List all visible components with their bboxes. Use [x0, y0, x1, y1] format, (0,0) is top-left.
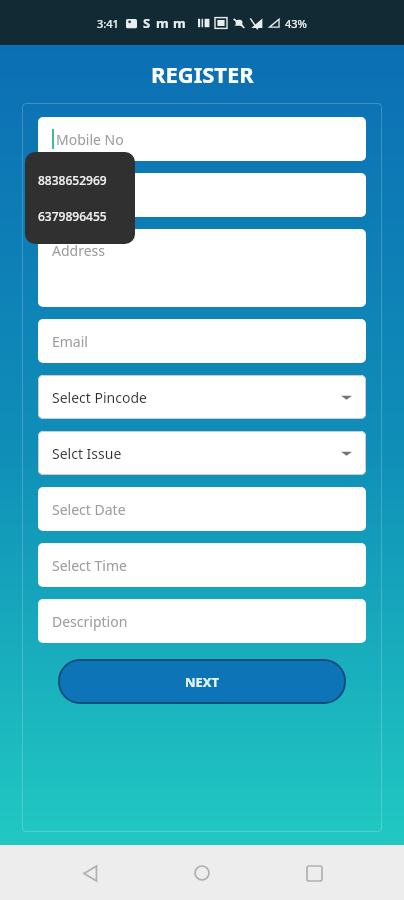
button[interactable]: Description	[38, 599, 366, 643]
staticText: 8838652969	[38, 172, 107, 188]
staticText: Description	[52, 612, 128, 631]
staticText: S	[143, 14, 151, 32]
staticText: 3:41	[97, 16, 119, 31]
button[interactable]: Select Date	[38, 487, 366, 531]
button[interactable]: Back	[68, 851, 112, 895]
staticText: REGISTER	[151, 59, 254, 89]
staticText: NEXT	[185, 673, 220, 691]
button[interactable]: Selct Issue	[38, 431, 366, 475]
other: Open dropdown	[341, 448, 352, 459]
staticText: Select Time	[52, 556, 127, 575]
staticText: Selct Issue	[52, 444, 122, 463]
staticText: Mobile No	[56, 130, 124, 149]
staticText: Select Date	[52, 500, 126, 519]
staticText: m	[156, 14, 169, 32]
button[interactable]: NEXT	[58, 659, 346, 704]
staticText: Email	[52, 332, 88, 351]
button[interactable]: Select Pincode	[38, 375, 366, 419]
other: Open dropdown	[341, 392, 352, 403]
staticText: m	[173, 14, 186, 32]
button[interactable]: Email	[38, 319, 366, 363]
staticText: Select Pincode	[52, 388, 147, 407]
button[interactable]: Home	[180, 851, 224, 895]
staticText: Address	[52, 241, 105, 260]
button[interactable]: 6379896455	[38, 208, 122, 224]
staticText: 43%	[285, 16, 307, 31]
staticText: 6379896455	[38, 208, 107, 224]
button[interactable]: Address	[38, 229, 366, 307]
button[interactable]	[38, 173, 366, 217]
button[interactable]: Mobile No	[38, 117, 366, 161]
button[interactable]: Select Time	[38, 543, 366, 587]
button[interactable]: Recent apps	[292, 851, 336, 895]
button[interactable]: 8838652969	[38, 172, 122, 188]
